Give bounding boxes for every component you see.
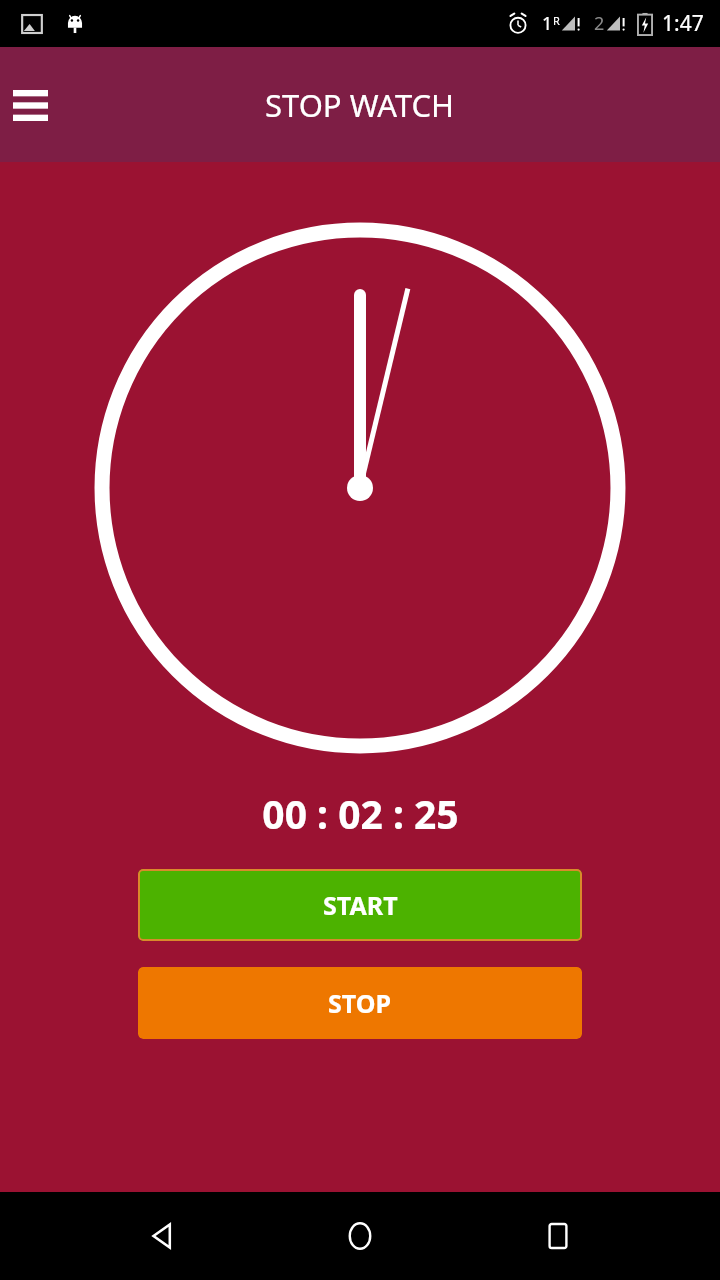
staticText: R xyxy=(553,13,560,28)
staticText: 1 xyxy=(542,11,553,36)
staticText: 2 xyxy=(594,11,605,36)
button[interactable]: Back xyxy=(128,1201,198,1271)
staticText: START xyxy=(323,888,398,922)
staticText: STOP WATCH xyxy=(265,84,455,126)
staticText: STOP xyxy=(328,986,392,1020)
button[interactable]: Recent apps xyxy=(523,1201,593,1271)
button[interactable]: Home xyxy=(325,1201,395,1271)
staticText: 00 : 02 : 25 xyxy=(262,787,459,840)
button[interactable]: Open navigation menu xyxy=(4,79,56,131)
button[interactable]: STOP xyxy=(138,967,582,1039)
button[interactable]: START xyxy=(138,869,582,941)
staticText: 1:47 xyxy=(662,9,704,38)
